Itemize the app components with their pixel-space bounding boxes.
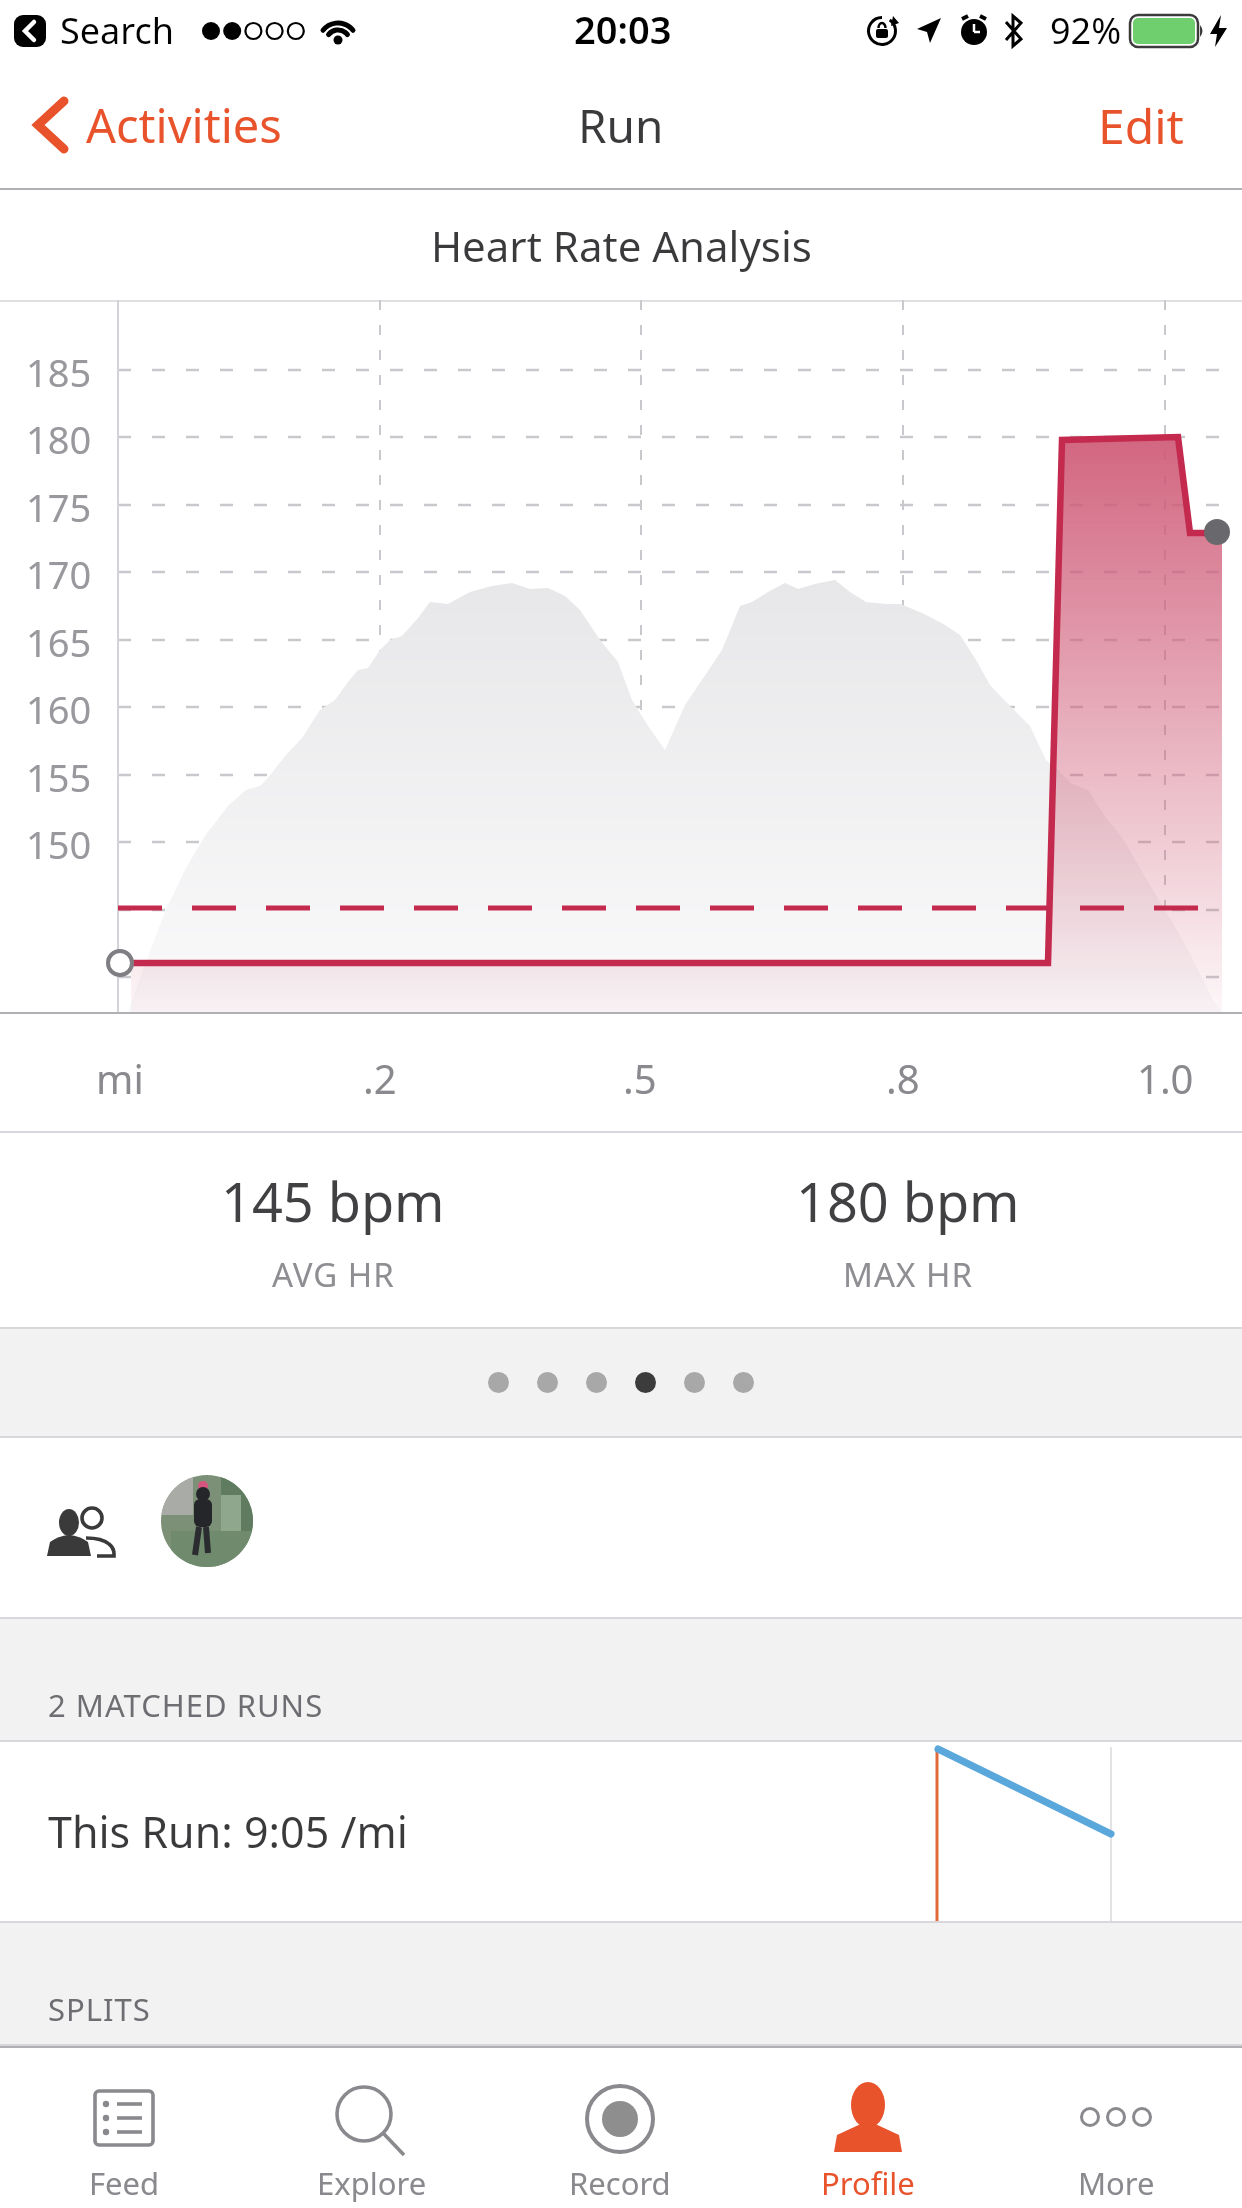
staticText: 160 — [26, 683, 92, 731]
staticText: 180 bpm — [796, 1164, 1020, 1238]
button[interactable] — [586, 1372, 607, 1393]
button[interactable]: This Run: 9:05 /mi — [0, 1742, 1242, 1921]
staticText: SPLITS — [48, 1988, 151, 2030]
staticText: 180 — [26, 413, 92, 461]
button[interactable] — [733, 1372, 754, 1393]
button[interactable] — [537, 1372, 558, 1393]
staticText: 2 MATCHED RUNS — [48, 1684, 324, 1726]
staticText: More — [1078, 2162, 1155, 2204]
button[interactable]: Activities — [30, 93, 282, 157]
staticText: mi — [96, 1051, 144, 1105]
staticText: 150 — [26, 818, 92, 866]
button[interactable] — [684, 1372, 705, 1393]
button[interactable]: Record — [496, 2048, 744, 2208]
staticText: Feed — [89, 2162, 160, 2204]
staticText: 92% — [1050, 6, 1122, 55]
staticText: 165 — [26, 616, 92, 664]
staticText: 155 — [26, 751, 92, 799]
staticText: 1.0 — [1137, 1051, 1194, 1105]
staticText: Heart Rate Analysis — [431, 217, 812, 274]
staticText: .8 — [886, 1051, 920, 1105]
button[interactable] — [161, 1475, 253, 1567]
staticText: 185 — [26, 346, 92, 394]
button[interactable]: Feed — [0, 2048, 248, 2208]
staticText: Explore — [317, 2162, 427, 2204]
staticText: AVG HR — [272, 1252, 395, 1297]
button[interactable]: More — [992, 2048, 1240, 2208]
staticText: Profile — [821, 2162, 915, 2204]
button[interactable]: Profile — [744, 2048, 992, 2208]
button[interactable]: Edit — [1098, 93, 1184, 158]
button[interactable] — [635, 1372, 656, 1393]
staticText: Run — [578, 94, 664, 157]
staticText: .2 — [363, 1051, 397, 1105]
staticText: This Run: 9:05 /mi — [48, 1802, 408, 1861]
staticText: 170 — [26, 548, 92, 596]
staticText: .5 — [623, 1051, 657, 1105]
staticText: 145 bpm — [221, 1164, 445, 1238]
button[interactable]: Explore — [248, 2048, 496, 2208]
staticText: 20:03 — [574, 3, 672, 55]
staticText: 175 — [26, 481, 92, 529]
button[interactable] — [44, 1495, 124, 1559]
button[interactable] — [488, 1372, 509, 1393]
staticText: MAX HR — [843, 1252, 973, 1297]
staticText: Search — [60, 6, 174, 55]
staticText: Record — [569, 2162, 671, 2204]
staticText: Activities — [86, 93, 282, 157]
